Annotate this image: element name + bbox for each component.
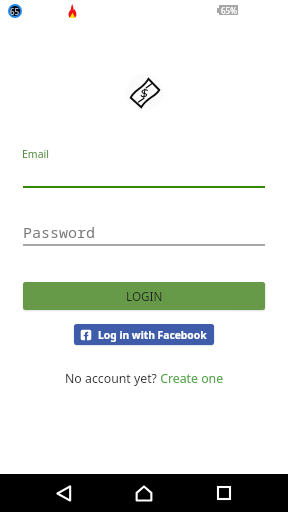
staticText: 65% xyxy=(221,5,237,15)
button[interactable]: Log in with Facebook xyxy=(74,324,214,345)
staticText: No account yet? Create one xyxy=(65,370,224,387)
staticText: Password xyxy=(23,222,96,242)
staticText: Email xyxy=(22,147,49,161)
button[interactable]: LOGIN xyxy=(23,282,265,310)
staticText: 65 xyxy=(10,6,20,17)
button[interactable]: No account yet? Create one xyxy=(0,370,288,387)
button[interactable]: Home xyxy=(120,474,168,512)
button[interactable]: Back xyxy=(40,474,88,512)
button[interactable]: Recents xyxy=(200,474,248,512)
staticText: Log in with Facebook xyxy=(98,328,207,342)
staticText: LOGIN xyxy=(126,288,163,304)
